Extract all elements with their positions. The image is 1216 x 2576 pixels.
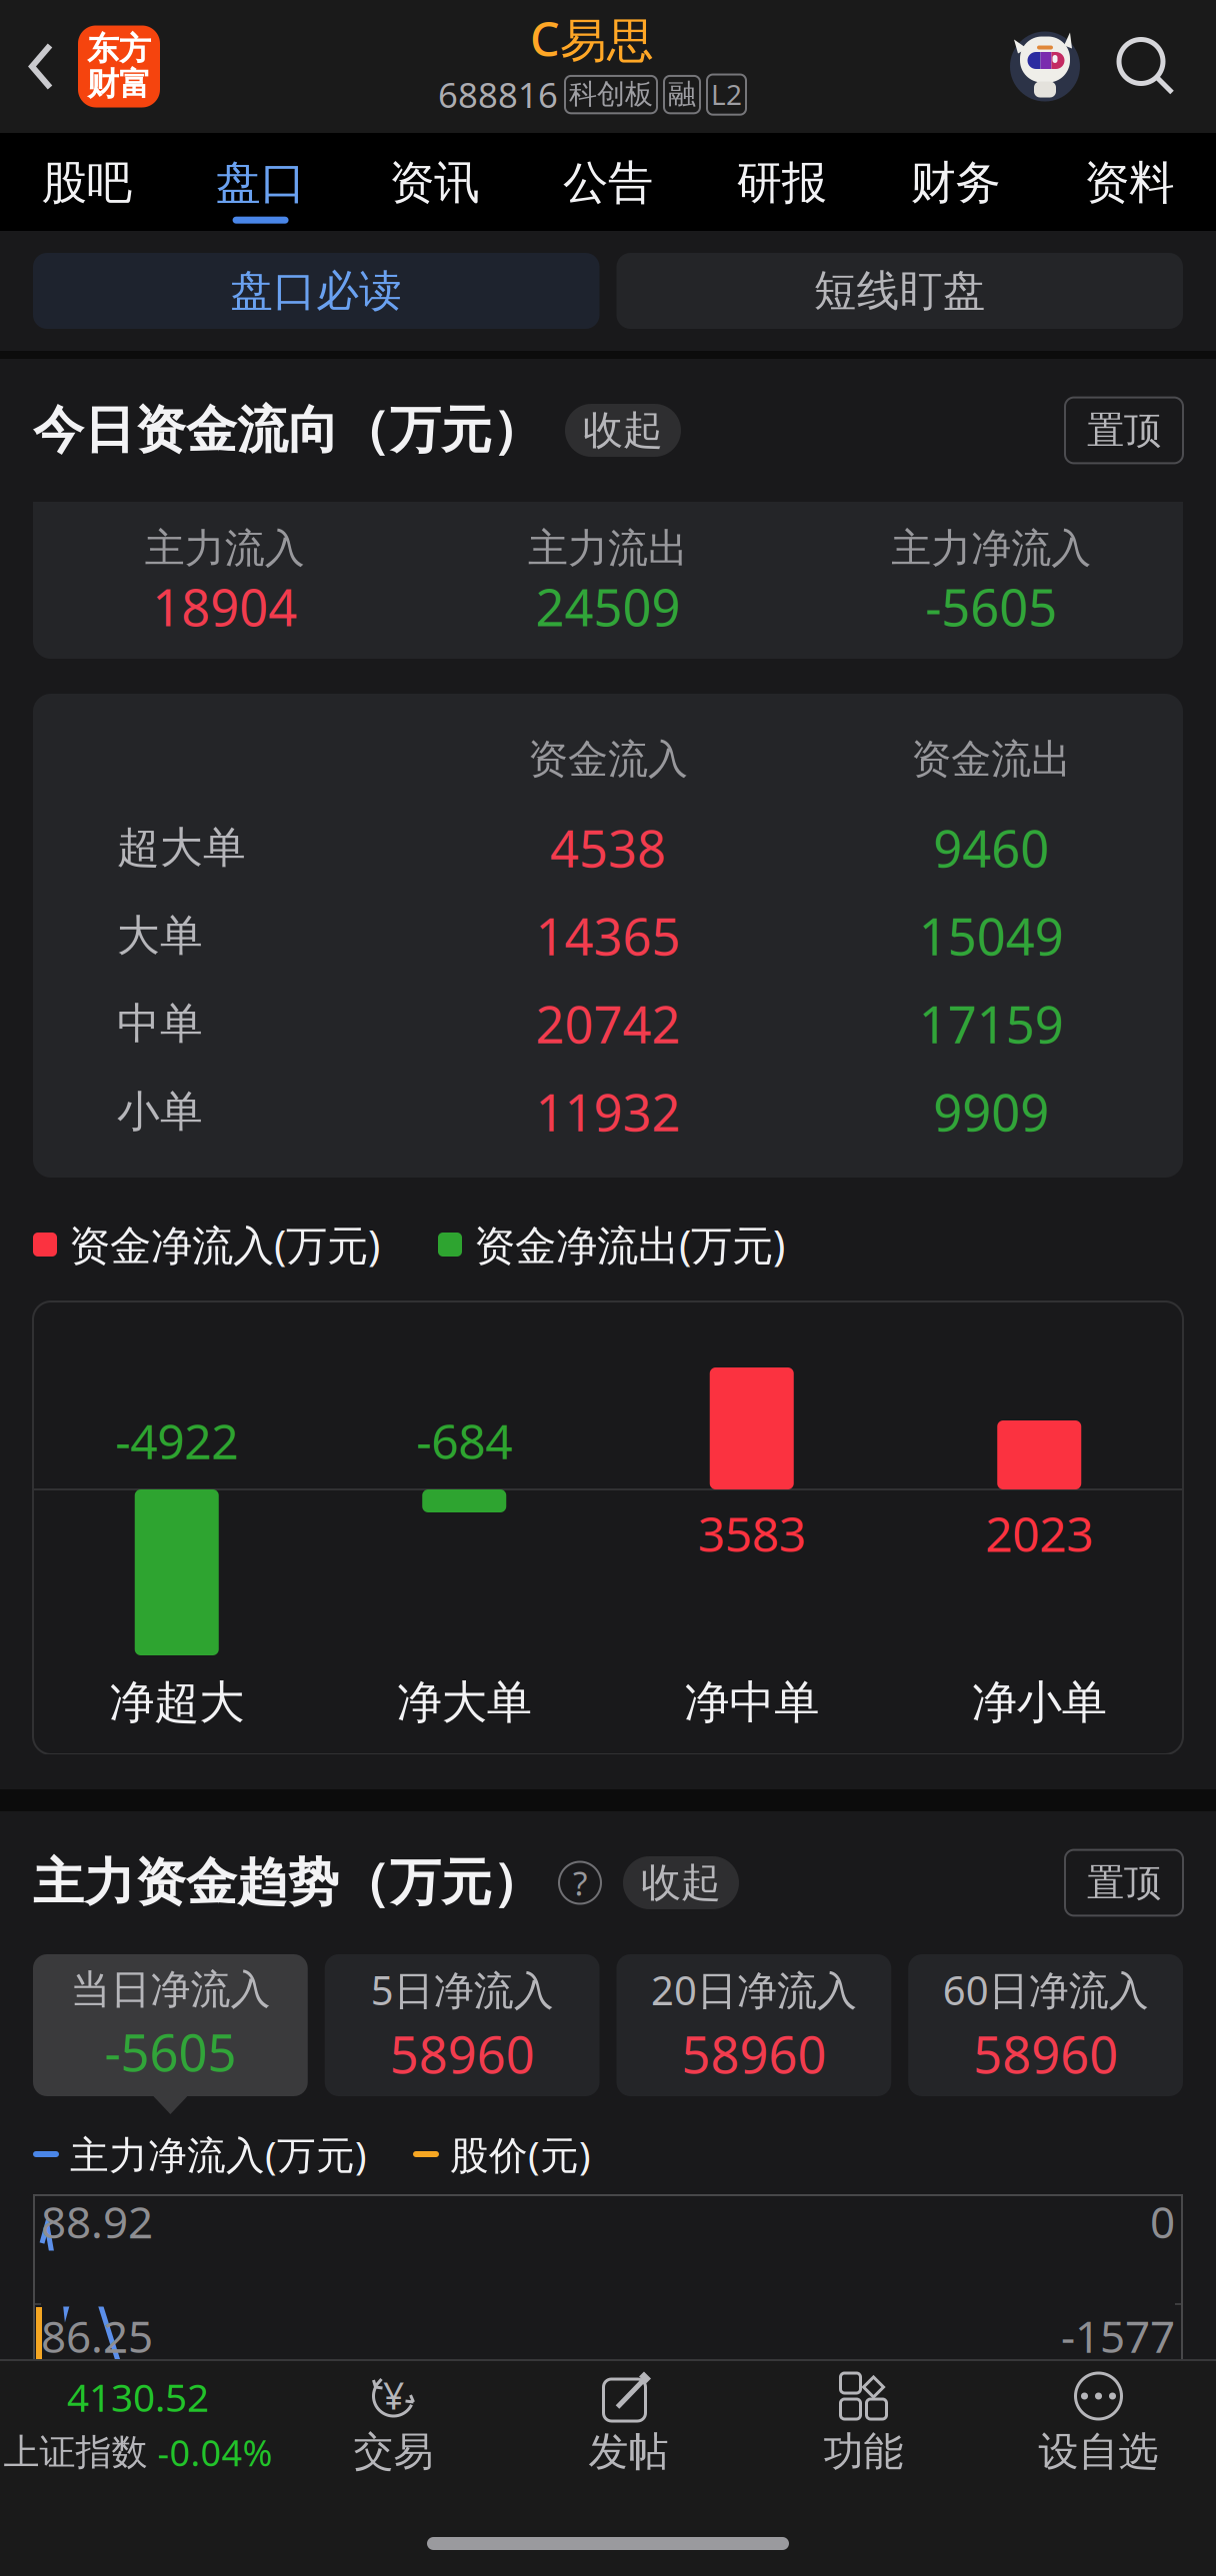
staticText: ? — [573, 1861, 587, 1905]
staticText: 主力净流入(万元) — [70, 2128, 367, 2180]
button[interactable]: ¥ — [276, 2361, 511, 2501]
staticText: 净超大 — [109, 1675, 244, 1730]
staticText: 资金流入 — [528, 735, 688, 784]
staticText: 4130.52 — [67, 2371, 209, 2422]
button[interactable]: 60日净流入 — [908, 1954, 1183, 2114]
staticText: 资金净流出(万元) — [474, 1217, 785, 1272]
staticText: 公告 — [563, 155, 653, 211]
staticText: 研报 — [737, 155, 827, 211]
staticText: 主力流入 — [145, 524, 305, 573]
button[interactable]: 财务 — [869, 133, 1042, 231]
staticText: 收起 — [641, 1858, 721, 1907]
button[interactable]: 发帖 — [511, 2361, 746, 2501]
button[interactable]: 设自选 — [981, 2361, 1216, 2501]
button[interactable]: 股吧 — [0, 133, 174, 231]
button[interactable]: 短线盯盘 — [616, 253, 1183, 329]
staticText: 0 — [1150, 2192, 1175, 2251]
staticText: 5日净流入 — [371, 1963, 554, 2016]
staticText: 净中单 — [684, 1675, 819, 1730]
staticText: 58960 — [973, 2020, 1118, 2087]
staticText: 净大单 — [397, 1675, 532, 1730]
staticText: 小单 — [117, 1085, 203, 1138]
staticText: 88.92 — [41, 2192, 153, 2251]
staticText: 财富 — [87, 64, 151, 104]
button[interactable]: 置顶 — [1065, 397, 1183, 463]
staticText: 置顶 — [1087, 407, 1161, 453]
staticText: 置顶 — [1087, 1860, 1161, 1906]
staticText: ¥ — [383, 2370, 404, 2420]
staticText: 688816 — [438, 72, 558, 118]
staticText: 11932 — [535, 1078, 680, 1145]
staticText: 融 — [668, 77, 696, 111]
button[interactable]: 盘口 — [174, 133, 347, 231]
staticText: 资料 — [1084, 155, 1174, 211]
staticText: -684 — [416, 1409, 512, 1472]
button[interactable]: 研报 — [695, 133, 869, 231]
staticText: -4922 — [115, 1409, 238, 1472]
staticText: 超大单 — [117, 822, 246, 874]
staticText: 大单 — [117, 910, 203, 962]
staticText: 主力流出 — [528, 524, 688, 573]
staticText: 60日净流入 — [943, 1963, 1149, 2016]
staticText: 股价(元) — [450, 2128, 591, 2180]
button[interactable]: 置顶 — [1065, 1850, 1183, 1916]
staticText: 86.25 — [41, 2307, 153, 2365]
staticText: 短线盯盘 — [814, 265, 986, 317]
staticText: 交易 — [353, 2427, 433, 2476]
button[interactable]: 收起 — [565, 404, 681, 457]
staticText: 3583 — [698, 1501, 806, 1565]
staticText: C易思 — [530, 7, 654, 70]
staticText: 中单 — [117, 998, 203, 1050]
button[interactable]: 20日净流入 — [616, 1954, 891, 2114]
button[interactable]: 资讯 — [347, 133, 521, 231]
staticText: 收起 — [583, 406, 663, 455]
staticText: -0.04% — [157, 2428, 272, 2476]
staticText: 9909 — [933, 1078, 1049, 1145]
button[interactable]: 当日净流入 — [33, 1954, 308, 2114]
staticText: 20日净流入 — [651, 1963, 857, 2016]
staticText: 2023 — [985, 1501, 1093, 1565]
staticText: 18904 — [152, 573, 297, 640]
staticText: 资金流出 — [911, 735, 1071, 784]
staticText: 58960 — [681, 2020, 826, 2087]
button[interactable]: 收起 — [623, 1856, 739, 1909]
button[interactable]: 盘口必读 — [33, 253, 599, 329]
button[interactable]: AI assistant — [1010, 31, 1080, 101]
staticText: 上证指数 — [3, 2430, 147, 2474]
staticText: 15049 — [919, 902, 1064, 969]
staticText: 资金净流入(万元) — [69, 1217, 380, 1272]
staticText: 当日净流入 — [70, 1965, 270, 2014]
staticText: -5605 — [925, 573, 1057, 640]
staticText: -1577 — [1061, 2307, 1175, 2365]
staticText: L2 — [711, 75, 742, 113]
button[interactable]: Back — [0, 0, 174, 133]
staticText: 9460 — [933, 814, 1049, 881]
button[interactable]: Search — [1116, 36, 1176, 96]
staticText: 资讯 — [389, 155, 479, 211]
staticText: 科创板 — [569, 77, 653, 111]
staticText: 盘口必读 — [230, 265, 402, 317]
staticText: 主力资金趋势（万元） — [33, 1852, 543, 1914]
staticText: 东方 — [87, 29, 151, 68]
button[interactable]: 资料 — [1042, 133, 1216, 231]
staticText: -5605 — [104, 2018, 236, 2085]
staticText: 盘口 — [216, 155, 306, 211]
staticText: 17159 — [919, 990, 1064, 1057]
button[interactable]: 5日净流入 — [325, 1954, 600, 2114]
staticText: 20742 — [535, 990, 680, 1057]
button[interactable]: 功能 — [746, 2361, 981, 2501]
staticText: 24509 — [535, 573, 680, 640]
button[interactable]: 4130.52 — [0, 2361, 276, 2501]
staticText: 58960 — [390, 2020, 535, 2087]
staticText: 14365 — [535, 902, 680, 969]
staticText: 财务 — [910, 155, 1000, 211]
staticText: 净小单 — [972, 1675, 1107, 1730]
staticText: 4538 — [550, 814, 666, 881]
staticText: 今日资金流向（万元） — [33, 399, 543, 461]
staticText: 发帖 — [588, 2427, 668, 2476]
staticText: 股吧 — [42, 155, 132, 211]
staticText: 功能 — [823, 2427, 903, 2476]
button[interactable]: 公告 — [521, 133, 695, 231]
staticText: 设自选 — [1038, 2427, 1158, 2476]
staticText: 主力净流入 — [891, 524, 1091, 573]
